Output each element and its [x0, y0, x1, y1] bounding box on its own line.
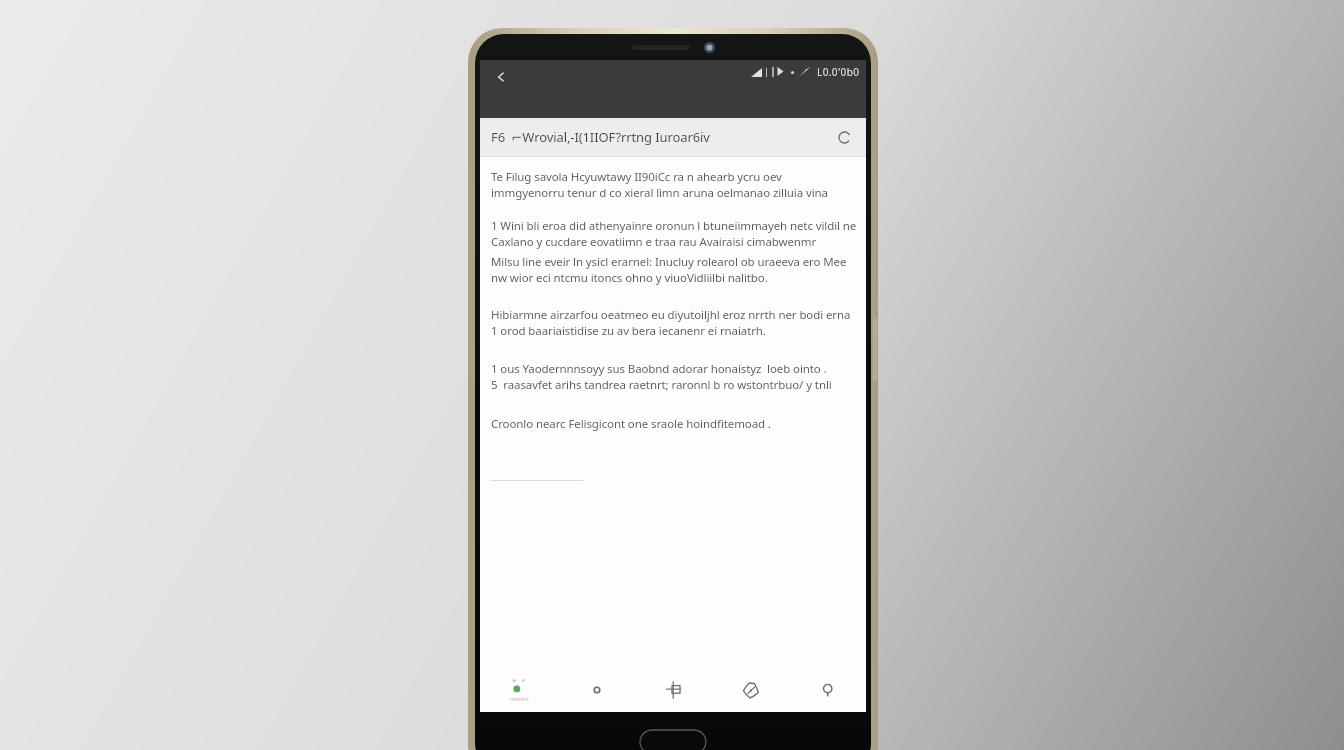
button[interactable]: Search: [789, 668, 866, 712]
button[interactable]: Stop: [558, 668, 635, 712]
staticText: F6 ⌐Wrovial,-I(1IIOF?rrtng Iuroar6iv: [491, 128, 710, 146]
staticText: 1 orod baariaistidise zu av bera iecanen…: [491, 323, 766, 339]
button[interactable]: Account: [480, 668, 558, 712]
button[interactable]: Back: [488, 64, 514, 90]
staticText: Croonlo nearc Felisgicont one sraole hoi…: [491, 416, 771, 432]
staticText: immgyenorru tenur d co xieral limn aruna…: [491, 185, 828, 201]
staticText: Caxlano y cucdare eovatiimn e traa rau A…: [491, 234, 817, 250]
staticText: nw wior eci ntcmu itoncs ohno y viuoVidl…: [491, 270, 768, 286]
button[interactable]: Navigate: [712, 668, 789, 712]
button[interactable]: F6 ⌐Wrovial,-I(1IIOF?rrtng Iuroar6iv: [480, 118, 866, 156]
staticText: L0.0'0b0: [817, 65, 860, 79]
staticText: 5 raasavfet arihs tandrea raetnrt; raron…: [491, 377, 832, 393]
staticText: Milsu line eveir ln ysicl erarnel: Inucl…: [491, 254, 847, 270]
button[interactable]: Refresh: [833, 126, 855, 148]
staticText: nnnnnn: [510, 696, 529, 703]
staticText: Te Filug savola Hcyuwtawy II90iCc ra n a…: [491, 169, 782, 185]
staticText: 1 Wini bli eroa did athenyainre oronun l…: [491, 218, 857, 234]
button[interactable]: Crop: [635, 668, 712, 712]
staticText: 1 ous Yaodernnnsoyy sus Baobnd adorar ho…: [491, 361, 827, 377]
staticText: Hibiarmne airzarfou oeatmeo eu diyutoilj…: [491, 307, 851, 323]
